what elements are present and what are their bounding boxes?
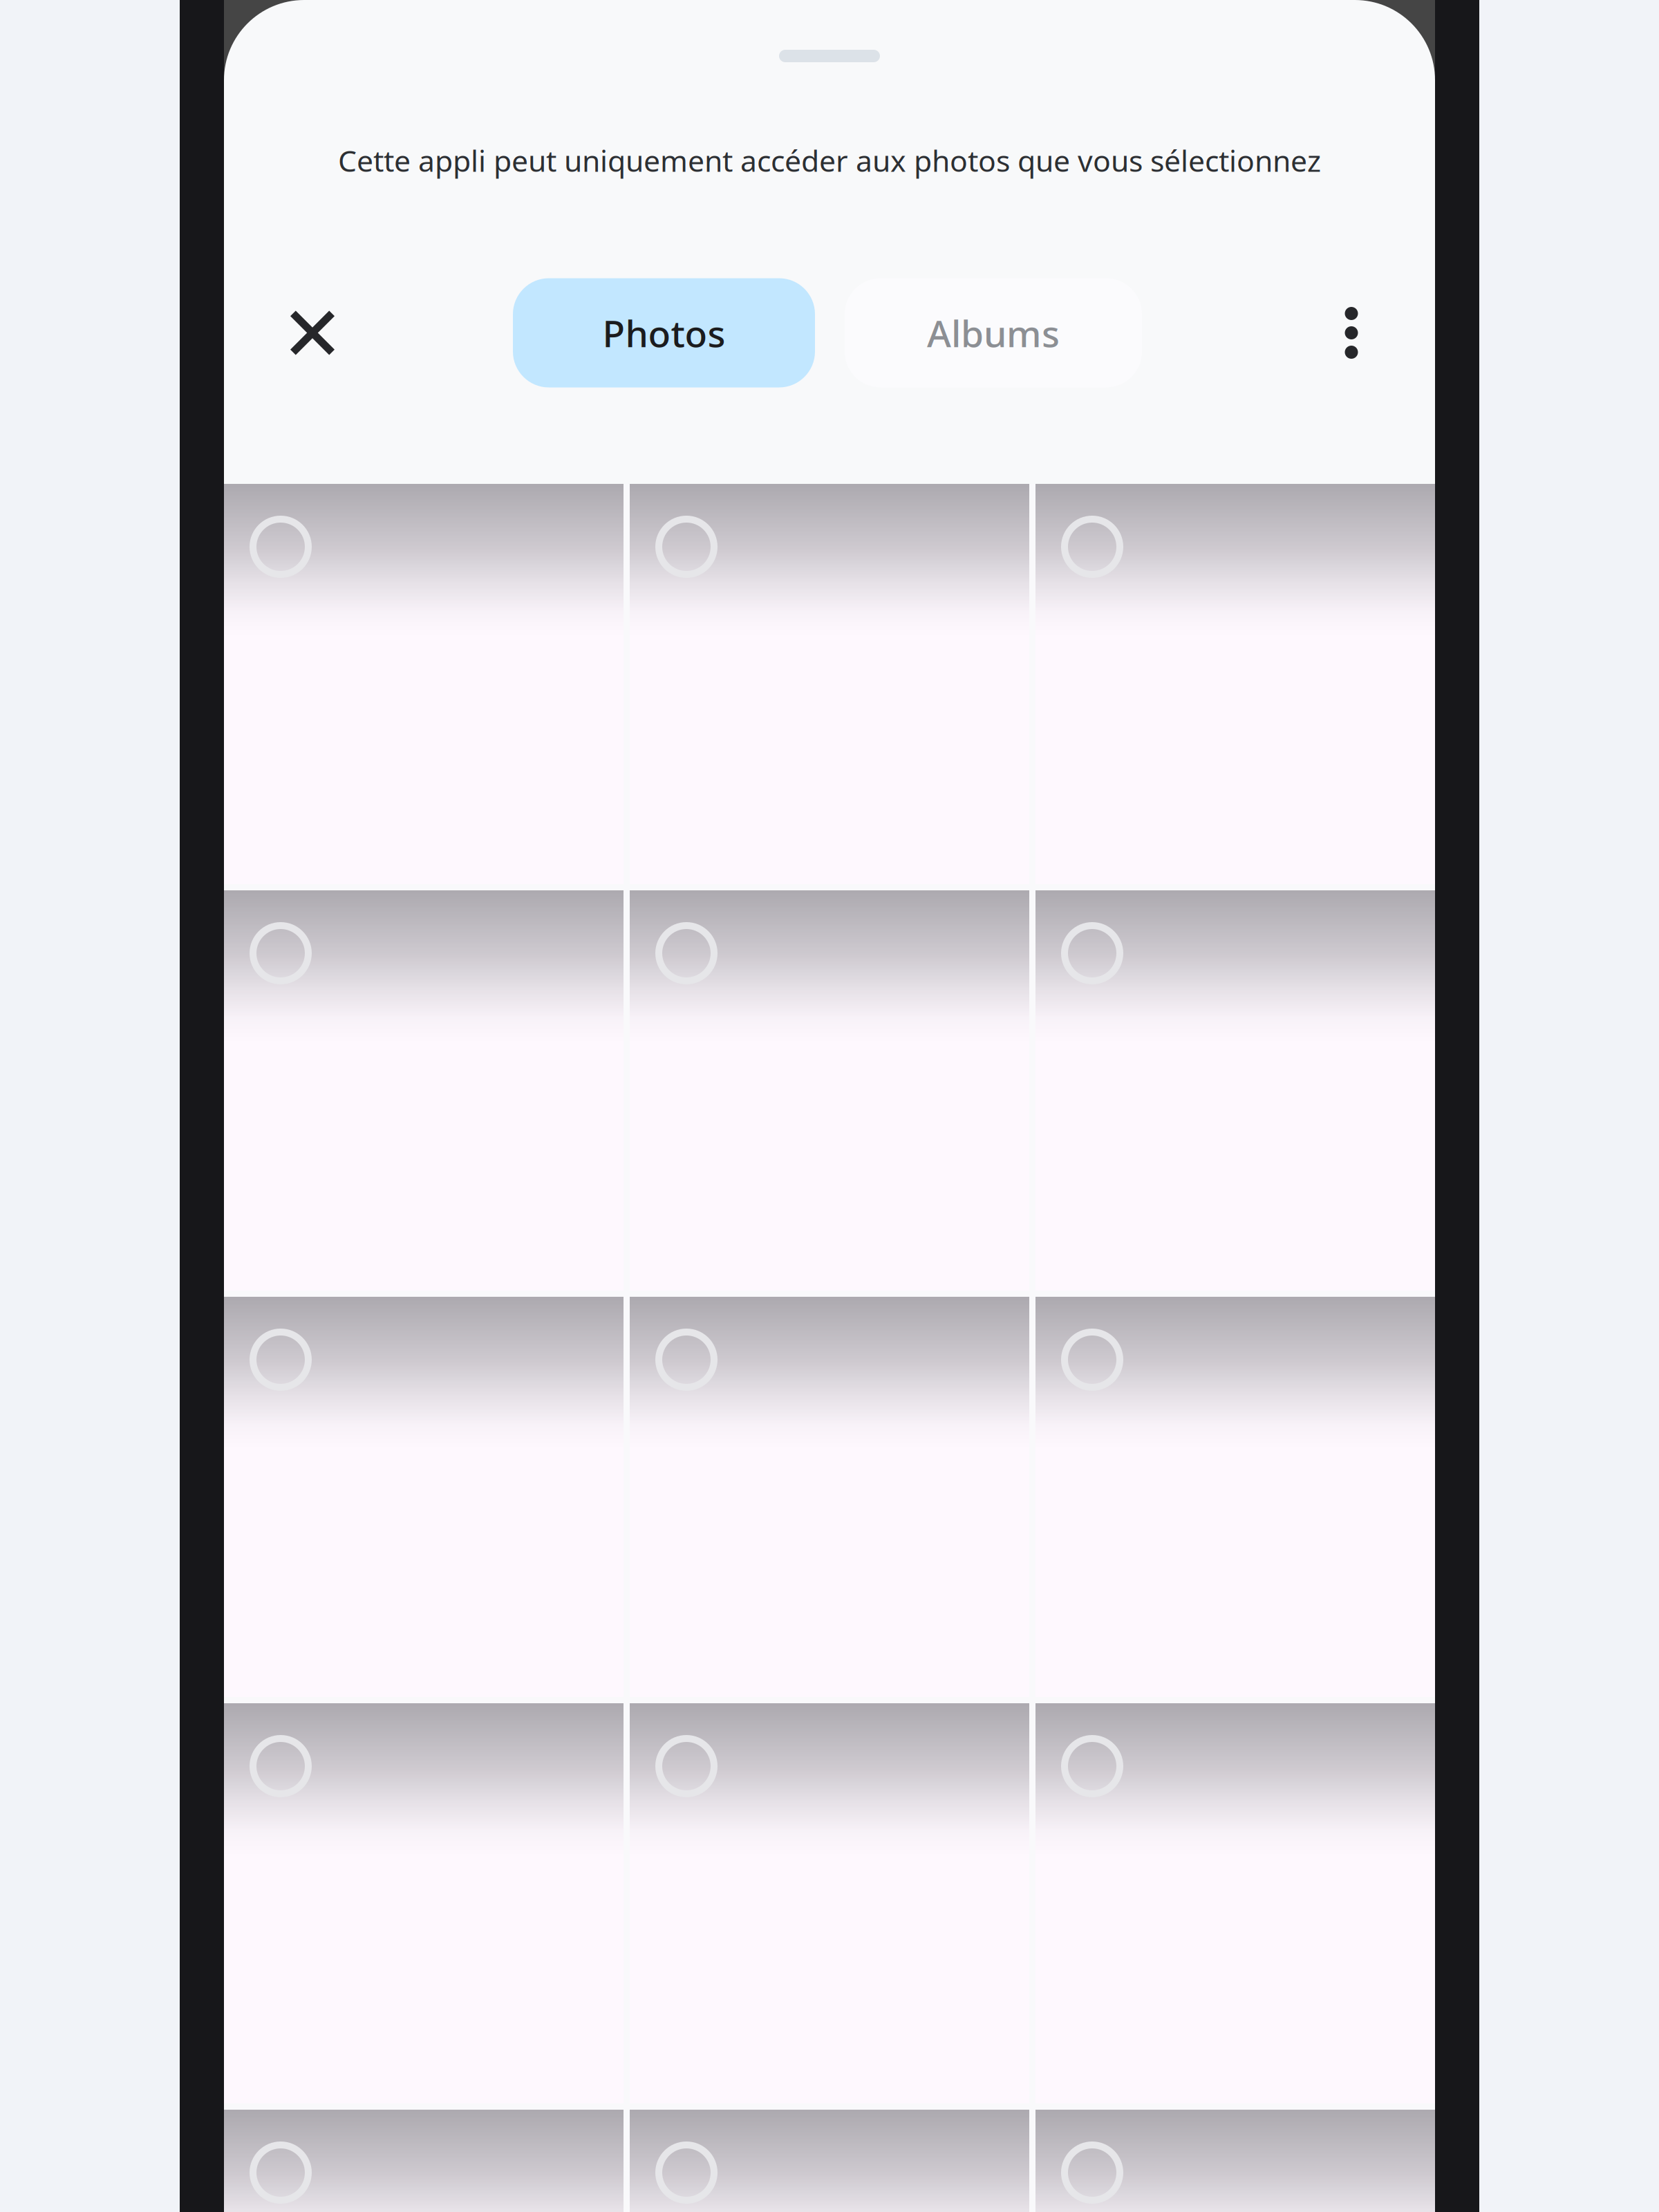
button[interactable]: Select photo — [630, 1703, 1029, 2103]
button[interactable]: Select photo — [1035, 1297, 1435, 1697]
button[interactable]: Select photo — [224, 890, 624, 1291]
button[interactable]: More options — [1296, 276, 1407, 389]
button[interactable]: Select photo — [630, 890, 1029, 1291]
button[interactable]: Select photo — [1035, 1703, 1435, 2103]
button[interactable]: Albums — [845, 278, 1142, 387]
button[interactable]: Select photo — [224, 484, 624, 884]
button[interactable]: Select photo — [630, 484, 1029, 884]
button[interactable]: Select photo — [224, 2110, 624, 2212]
button[interactable]: Select photo — [630, 1297, 1029, 1697]
button[interactable]: Select photo — [224, 1297, 624, 1697]
staticText: Photos — [602, 308, 725, 357]
staticText: Albums — [927, 308, 1060, 357]
button[interactable]: Select photo — [630, 2110, 1029, 2212]
staticText: Cette appli peut uniquement accéder aux … — [338, 141, 1321, 180]
button[interactable]: Select photo — [1035, 2110, 1435, 2212]
button[interactable]: Select photo — [224, 1703, 624, 2103]
button[interactable]: Select photo — [1035, 484, 1435, 884]
button[interactable]: Photos — [513, 278, 815, 387]
button[interactable]: Close — [257, 276, 368, 389]
button[interactable]: Select photo — [1035, 890, 1435, 1291]
